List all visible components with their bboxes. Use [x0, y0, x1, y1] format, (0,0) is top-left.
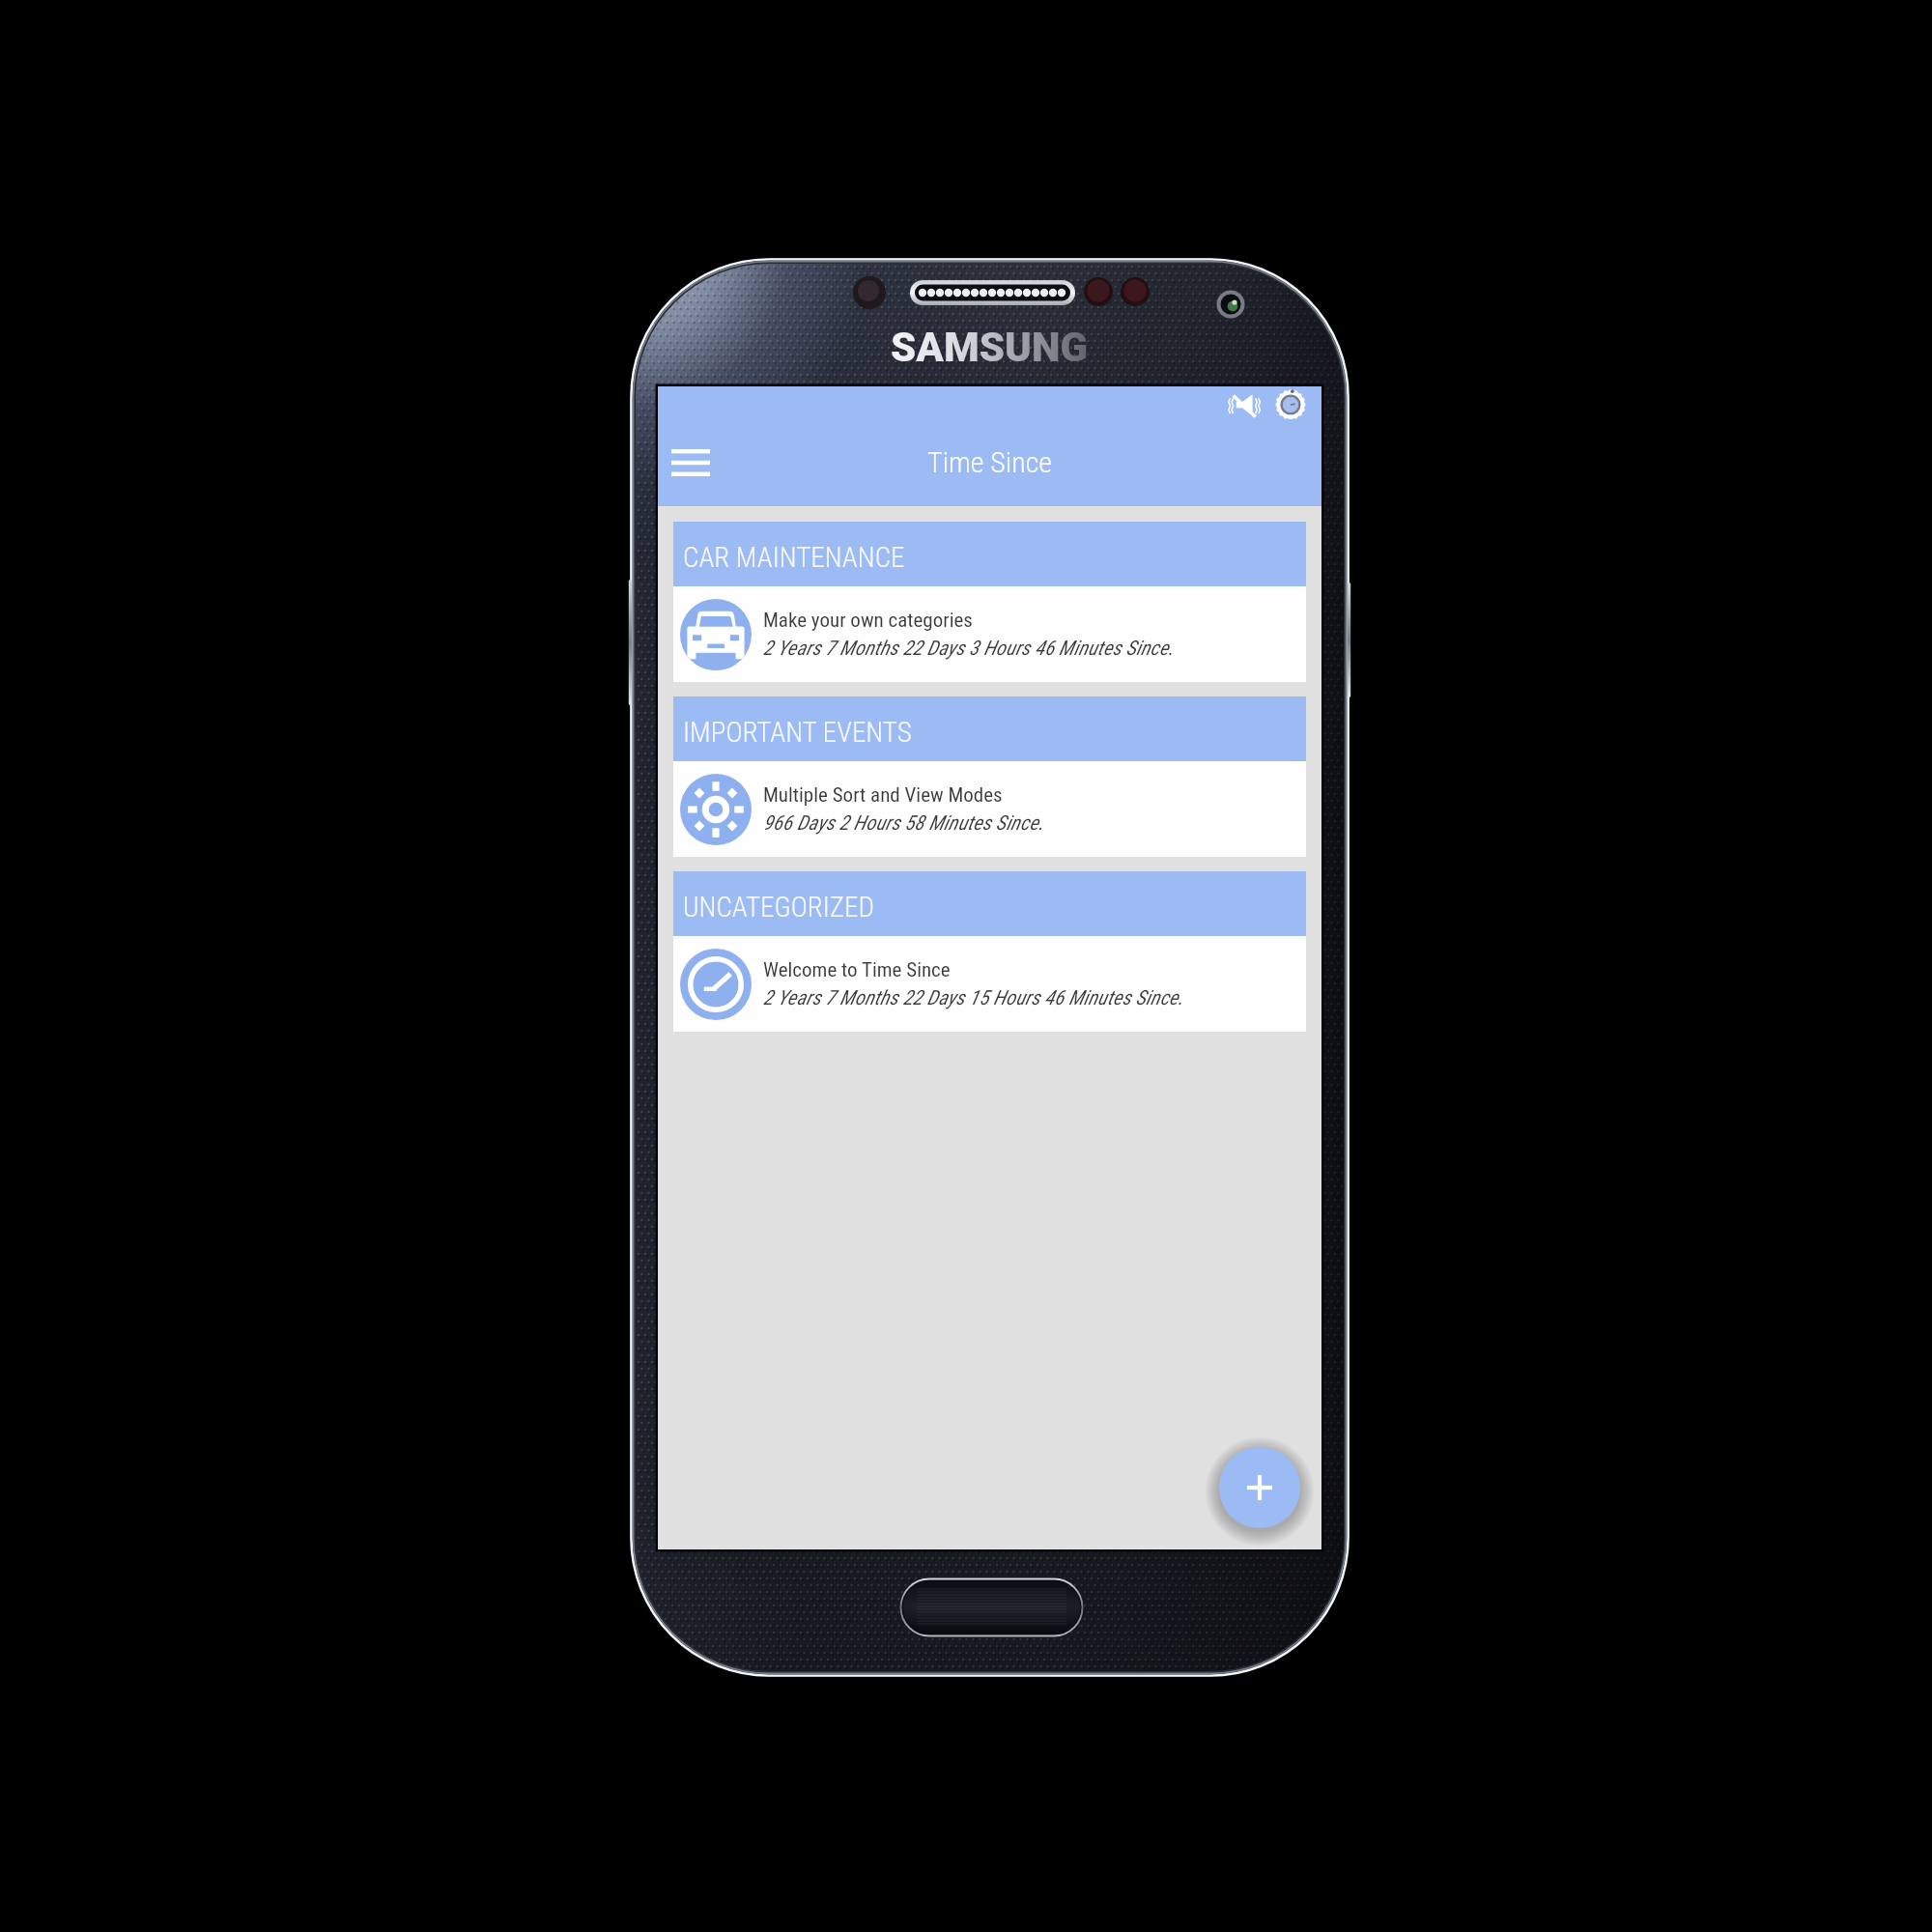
button[interactable]: Add new timer	[1219, 1447, 1300, 1528]
button[interactable]: UNCATEGORIZED	[673, 871, 1306, 1032]
staticText: SAMSUNG	[891, 324, 1089, 371]
button[interactable]: Open navigation menu	[661, 433, 721, 493]
staticText: UNCATEGORIZED	[683, 891, 874, 923]
button[interactable]: Sound off, vibrate	[1227, 393, 1264, 416]
staticText: 2 Years 7 Months 22 Days 3 Hours 46 Minu…	[763, 637, 1174, 661]
staticText: Make your own categories	[763, 609, 973, 633]
staticText: Multiple Sort and View Modes	[763, 783, 1003, 808]
staticText: CAR MAINTENANCE	[683, 541, 905, 574]
staticText: IMPORTANT EVENTS	[683, 716, 912, 749]
button[interactable]: CAR MAINTENANCE	[673, 522, 1306, 682]
staticText: 966 Days 2 Hours 58 Minutes Since.	[763, 811, 1044, 836]
staticText: 2 Years 7 Months 22 Days 15 Hours 46 Min…	[763, 986, 1183, 1010]
button[interactable]: IMPORTANT EVENTS	[673, 696, 1306, 857]
staticText: Time Since	[927, 445, 1052, 479]
button[interactable]: Stopwatch running	[1276, 390, 1305, 419]
staticText: Welcome to Time Since	[763, 958, 951, 982]
